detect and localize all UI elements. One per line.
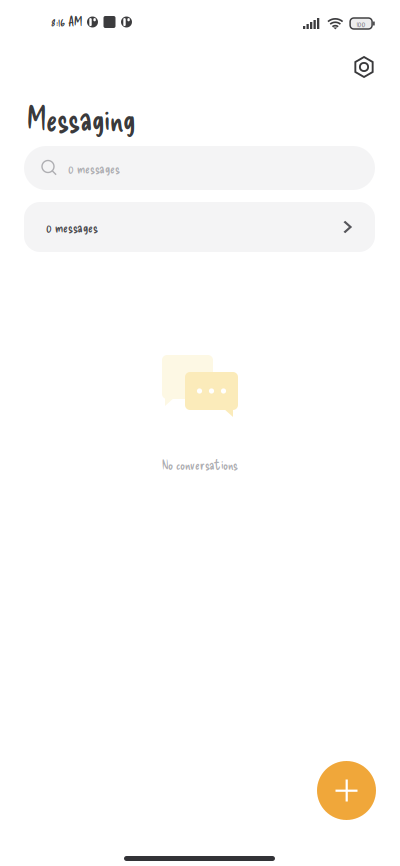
staticText: No conversations	[162, 456, 238, 472]
staticText: 0 messages	[46, 219, 98, 235]
button[interactable]: 0 messages	[24, 146, 375, 190]
button[interactable]: Settings	[344, 47, 384, 87]
staticText: 100	[357, 18, 366, 29]
staticText: 8:16 AM	[51, 12, 82, 29]
button[interactable]: New message	[317, 761, 376, 820]
button[interactable]: 0 messages	[24, 202, 375, 252]
staticText: 0 messages	[68, 160, 120, 176]
staticText: Messaging	[27, 98, 135, 138]
